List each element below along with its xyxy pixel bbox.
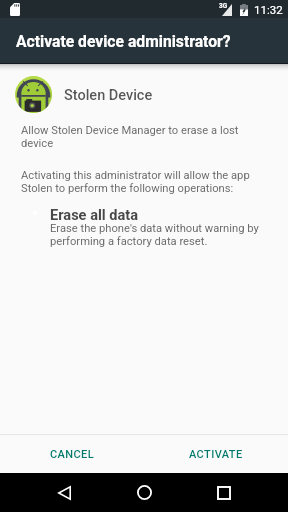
staticText: Erase the phone's data without warning b… (50, 222, 262, 248)
button[interactable]: Back (44, 473, 84, 512)
button[interactable]: Home (124, 473, 164, 512)
staticText: Activate device administrator? (16, 32, 231, 50)
staticText: Erase all data (50, 206, 139, 223)
staticText: ACTIVATE (189, 448, 243, 461)
button[interactable]: Recent apps (204, 473, 244, 512)
staticText: 11:32 (254, 3, 283, 16)
button[interactable]: ACTIVATE (144, 435, 288, 473)
staticText: CANCEL (50, 448, 95, 461)
staticText: 3G (219, 2, 228, 10)
staticText: Stolen Device (64, 87, 153, 104)
staticText: Allow Stolen Device Manager to erase a l… (21, 124, 253, 150)
staticText: Activating this administrator will allow… (21, 169, 254, 194)
button[interactable]: CANCEL (0, 435, 144, 473)
